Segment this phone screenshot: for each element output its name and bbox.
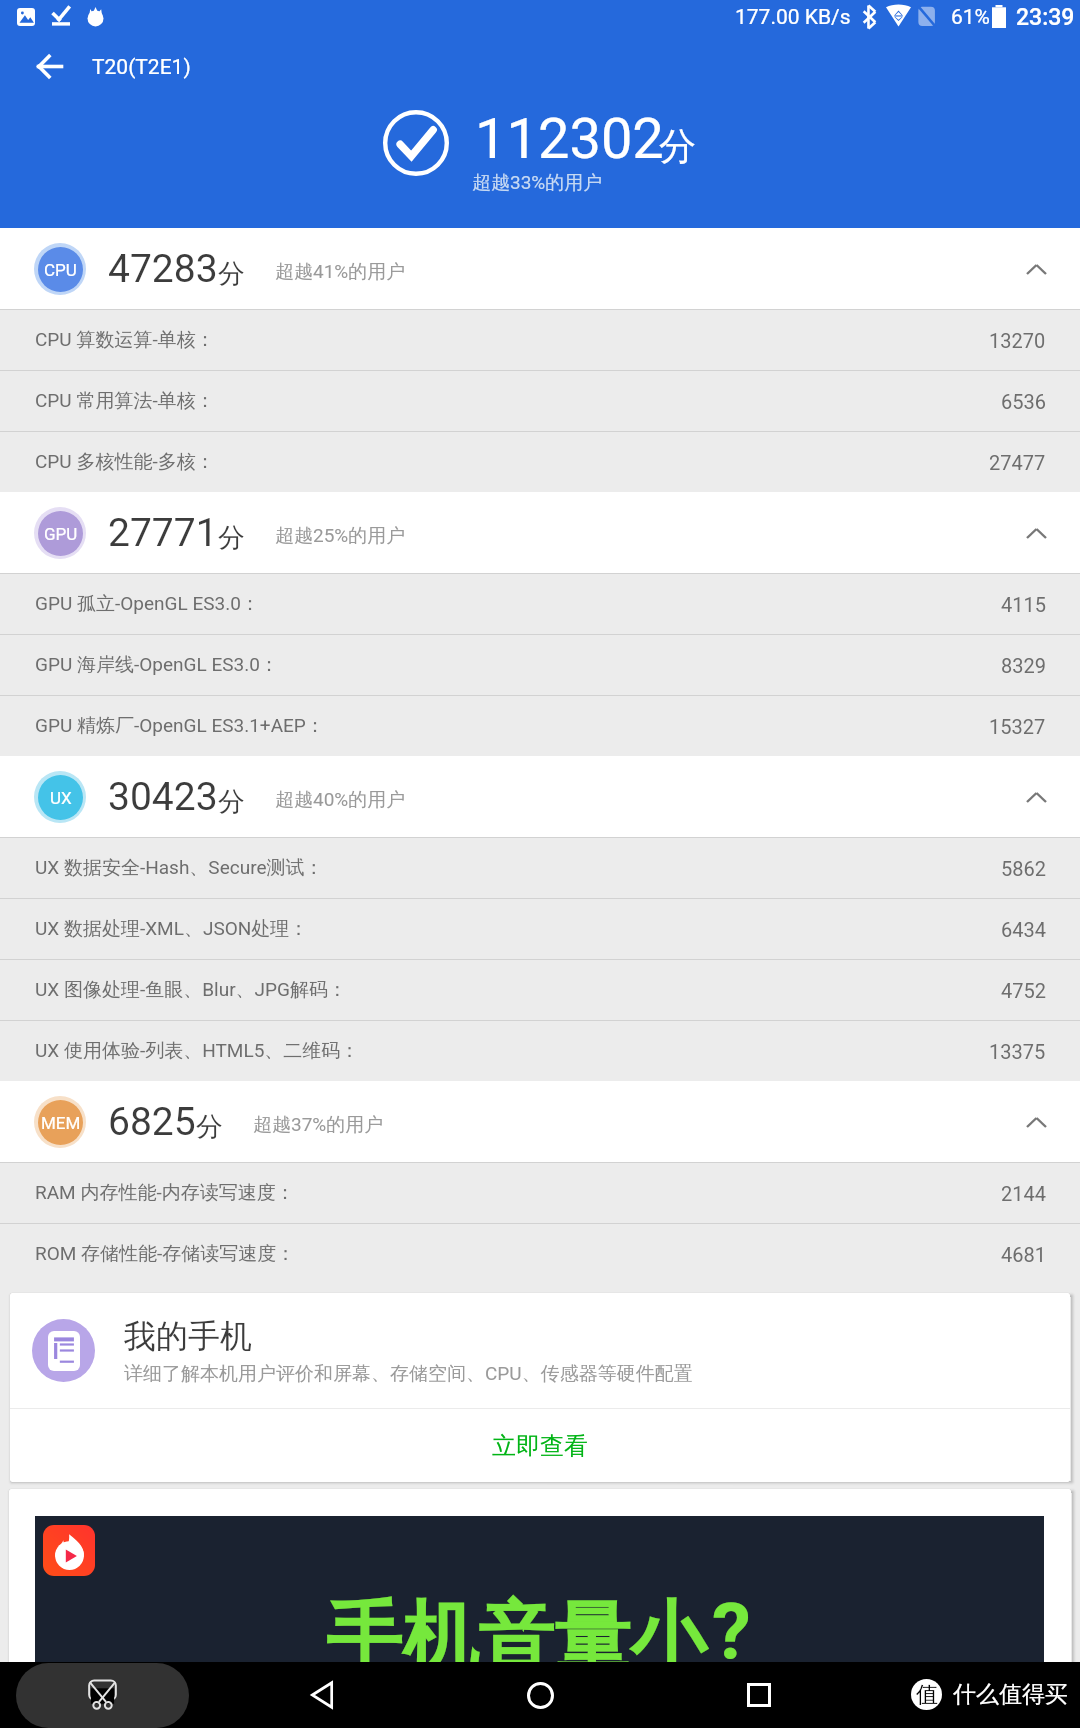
button[interactable]: Collapse — [1008, 767, 1068, 827]
button[interactable]: Collapse — [1008, 1092, 1068, 1152]
staticText: GPU 孤立-OpenGL ES3.0： — [35, 592, 260, 616]
staticText: 177.00 KB/s — [735, 5, 851, 30]
staticText: 分 — [218, 785, 245, 819]
staticText: 4681 — [1001, 1243, 1046, 1266]
staticText: 13270 — [989, 329, 1046, 352]
staticText: 手机音量小 — [326, 1590, 706, 1686]
button[interactable]: Back — [22, 38, 78, 94]
staticText: RAM 内存性能-内存读写速度： — [35, 1181, 295, 1205]
button[interactable]: Home — [500, 1665, 580, 1725]
staticText: CPU — [44, 260, 77, 280]
staticText: GPU 精炼厂-OpenGL ES3.1+AEP： — [35, 714, 325, 738]
button[interactable]: Collapse — [1008, 503, 1068, 563]
staticText: 超越37%的用户 — [253, 1113, 384, 1137]
staticText: GPU — [44, 524, 78, 544]
staticText: 超越25%的用户 — [275, 524, 406, 548]
staticText: MEM — [41, 1113, 81, 1133]
button[interactable]: MEM — [0, 1081, 1080, 1162]
staticText: 我的手机 — [124, 1316, 252, 1356]
button[interactable]: 手机音量小 — [9, 1489, 1071, 1728]
staticText: CPU 多核性能-多核： — [35, 450, 215, 474]
staticText: T20(T2E1) — [92, 55, 191, 80]
staticText: 什么值得买 — [953, 1680, 1068, 1709]
staticText: 4115 — [1001, 593, 1046, 616]
staticText: 6434 — [1001, 918, 1046, 941]
staticText: 超越40%的用户 — [275, 788, 406, 812]
button[interactable]: 我的手机 — [10, 1293, 1070, 1408]
staticText: 4752 — [1001, 979, 1046, 1002]
button[interactable]: UX 数据安全-Hash、Secure测试： — [0, 838, 1080, 898]
staticText: CPU 算数运算-单核： — [35, 328, 215, 352]
staticText: CPU 常用算法-单核： — [35, 389, 215, 413]
staticText: GPU 海岸线-OpenGL ES3.0： — [35, 653, 279, 677]
button[interactable]: UX 数据处理-XML、JSON处理： — [0, 899, 1080, 959]
button[interactable]: UX 图像处理-鱼眼、Blur、JPG解码： — [0, 960, 1080, 1020]
staticText: 立即查看 — [492, 1431, 588, 1461]
staticText: 分 — [218, 257, 245, 291]
staticText: 112302 — [475, 106, 664, 172]
button[interactable]: GPU 海岸线-OpenGL ES3.0： — [0, 635, 1080, 695]
button[interactable]: Back — [282, 1665, 362, 1725]
button[interactable]: Screenshot — [16, 1663, 189, 1728]
button[interactable]: GPU 精炼厂-OpenGL ES3.1+AEP： — [0, 696, 1080, 756]
button[interactable]: 立即查看 — [10, 1409, 1070, 1482]
button[interactable]: Recents — [719, 1665, 799, 1725]
staticText: 值 — [916, 1681, 938, 1709]
staticText: 5862 — [1001, 857, 1046, 880]
button[interactable]: UX — [0, 756, 1080, 837]
button[interactable]: CPU — [0, 228, 1080, 309]
staticText: 分 — [659, 123, 696, 170]
staticText: ? — [712, 1587, 751, 1678]
staticText: 超越41%的用户 — [275, 260, 406, 284]
staticText: 8329 — [1001, 654, 1046, 677]
staticText: 分 — [196, 1110, 223, 1144]
button[interactable]: CPU 算数运算-单核： — [0, 310, 1080, 370]
staticText: 47283 — [108, 246, 218, 292]
staticText: 13375 — [989, 1040, 1046, 1063]
staticText: 30423 — [108, 774, 218, 820]
button[interactable]: UX 使用体验-列表、HTML5、二维码： — [0, 1021, 1080, 1081]
staticText: 2144 — [1001, 1182, 1046, 1205]
button[interactable]: CPU 多核性能-多核： — [0, 432, 1080, 492]
staticText: 15327 — [989, 715, 1046, 738]
staticText: UX 使用体验-列表、HTML5、二维码： — [35, 1039, 360, 1063]
staticText: UX 数据处理-XML、JSON处理： — [35, 917, 309, 941]
staticText: UX 图像处理-鱼眼、Blur、JPG解码： — [35, 978, 347, 1002]
staticText: ROM 存储性能-存储读写速度： — [35, 1242, 296, 1266]
button[interactable]: RAM 内存性能-内存读写速度： — [0, 1163, 1080, 1223]
button[interactable]: GPU 孤立-OpenGL ES3.0： — [0, 574, 1080, 634]
staticText: 27771 — [108, 510, 218, 556]
button[interactable]: GPU — [0, 492, 1080, 573]
staticText: UX — [50, 788, 72, 808]
button[interactable]: Collapse — [1008, 239, 1068, 299]
staticText: 分 — [218, 521, 245, 555]
staticText: 61% — [951, 5, 990, 30]
staticText: 6825 — [108, 1099, 196, 1145]
staticText: 详细了解本机用户评价和屏幕、存储空间、CPU、传感器等硬件配置 — [124, 1362, 693, 1386]
staticText: UX 数据安全-Hash、Secure测试： — [35, 856, 324, 880]
button[interactable]: CPU 常用算法-单核： — [0, 371, 1080, 431]
staticText: 超越33%的用户 — [472, 171, 603, 195]
button[interactable]: ROM 存储性能-存储读写速度： — [0, 1224, 1080, 1284]
staticText: 27477 — [989, 451, 1046, 474]
staticText: 6536 — [1001, 390, 1046, 413]
staticText: 23:39 — [1016, 4, 1075, 31]
